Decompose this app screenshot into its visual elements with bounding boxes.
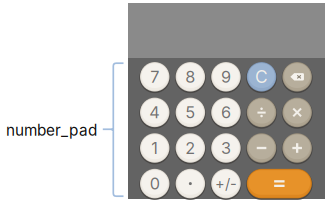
staticText: 5 [185,103,195,122]
button[interactable]: Decimal point [175,168,206,199]
button[interactable]: Equals [246,168,313,199]
button[interactable]: Multiply [282,96,313,128]
button[interactable]: 5 [175,96,206,128]
button[interactable]: 3 [210,132,241,164]
button[interactable]: Clear [246,61,277,93]
button[interactable]: Delete [282,61,313,93]
button[interactable]: Plus [282,132,313,164]
staticText: 7 [150,67,159,87]
staticText: 4 [149,103,160,122]
button[interactable]: 9 [210,61,241,93]
button[interactable]: 7 [139,61,170,93]
button[interactable]: 1 [139,132,170,164]
staticText: +/- [215,175,237,192]
button[interactable]: Minus [246,132,277,164]
staticText: 9 [221,67,231,87]
staticText: 1 [151,138,158,158]
staticText: number_pad [6,121,97,140]
button[interactable]: Divide [246,96,277,128]
button[interactable]: 4 [139,96,170,128]
staticText: 2 [185,138,195,158]
button[interactable]: +/- [210,168,241,199]
staticText: C [255,66,268,87]
button[interactable]: 2 [175,132,206,164]
button[interactable]: 8 [175,61,206,93]
button[interactable]: 6 [210,96,241,128]
staticText: 8 [185,67,195,87]
button[interactable]: 0 [139,168,170,199]
staticText: 0 [150,174,160,193]
staticText: 6 [221,103,231,122]
staticText: 3 [221,138,231,158]
